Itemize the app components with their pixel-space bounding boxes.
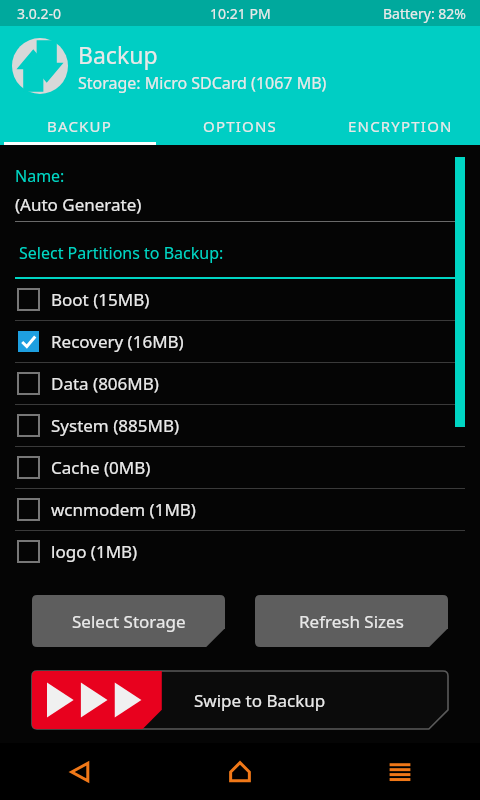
staticText: Backup <box>78 39 158 70</box>
button[interactable]: logo (1MB) <box>0 531 480 572</box>
button[interactable]: Refresh Sizes <box>255 595 448 647</box>
staticText: BACKUP <box>47 116 113 136</box>
staticText: logo (1MB) <box>51 540 138 563</box>
button[interactable]: Boot (15MB) <box>0 279 480 320</box>
staticText: Cache (0MB) <box>51 456 151 479</box>
staticText: Boot (15MB) <box>51 288 150 311</box>
staticText: OPTIONS <box>203 116 277 136</box>
button[interactable]: Data (806MB) <box>0 363 480 404</box>
button[interactable]: Back <box>0 743 160 800</box>
button[interactable]: wcnmodem (1MB) <box>0 489 480 530</box>
staticText: Data (806MB) <box>51 372 159 395</box>
button[interactable]: ENCRYPTION <box>320 106 480 145</box>
staticText: Name: <box>15 165 65 187</box>
button[interactable]: Select Storage <box>32 595 225 647</box>
staticText: Recovery (16MB) <box>51 330 184 353</box>
button[interactable]: System (885MB) <box>0 405 480 446</box>
button[interactable]: BACKUP <box>0 106 160 145</box>
button[interactable]: Cache (0MB) <box>0 447 480 488</box>
button[interactable]: OPTIONS <box>160 106 320 145</box>
staticText: Swipe to Backup <box>194 689 326 712</box>
staticText: 3.0.2-0 <box>17 4 62 23</box>
other: TWRP logo <box>12 38 68 94</box>
staticText: (Auto Generate) <box>15 193 142 216</box>
staticText: Storage: Micro SDCard (1067 MB) <box>78 72 327 94</box>
button[interactable]: Swipe to Backup <box>32 671 448 729</box>
staticText: System (885MB) <box>51 414 180 437</box>
button[interactable]: Home <box>160 743 320 800</box>
staticText: Select Partitions to Backup: <box>19 242 224 264</box>
staticText: ENCRYPTION <box>348 116 453 136</box>
staticText: Select Storage <box>72 610 186 633</box>
button[interactable]: Recovery (16MB) <box>0 321 480 362</box>
staticText: Battery: 82% <box>383 4 466 23</box>
staticText: 10:21 PM <box>210 4 271 23</box>
staticText: wcnmodem (1MB) <box>51 498 196 521</box>
staticText: Refresh Sizes <box>299 610 404 633</box>
button[interactable]: Menu <box>320 743 480 800</box>
